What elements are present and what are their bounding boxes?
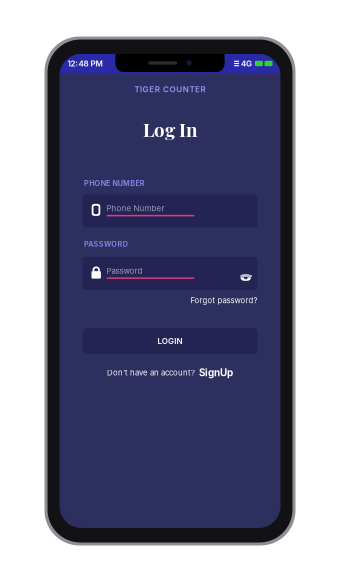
staticText: 12:48 PM: [67, 59, 102, 68]
staticText: SignUp: [199, 367, 233, 379]
staticText: Phone Number: [106, 203, 164, 213]
button[interactable]: SignUp: [195, 367, 233, 379]
staticText: Password: [106, 266, 142, 276]
staticText: LOGIN: [157, 336, 183, 346]
staticText: Forgot password?: [190, 296, 257, 305]
button[interactable]: LOGIN: [82, 328, 257, 354]
staticText: PASSWORD: [84, 240, 128, 248]
staticText: Don't have an account?: [107, 368, 195, 377]
button[interactable]: Show password: [232, 266, 259, 289]
staticText: PHONE NUMBER: [84, 179, 145, 188]
staticText: TIGER COUNTER: [134, 84, 206, 94]
staticText: Log In: [143, 117, 197, 142]
button[interactable]: Forgot password?: [190, 296, 257, 305]
staticText: 4G: [241, 59, 252, 68]
